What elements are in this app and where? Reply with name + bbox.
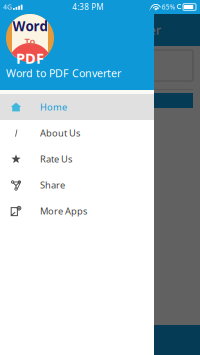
- staticText: Word: [12, 17, 47, 35]
- staticText: CONVERT: [75, 93, 125, 108]
- staticText: 4G: [3, 3, 12, 11]
- staticText: Word to PDF Converter: [30, 22, 161, 38]
- button[interactable]: Share: [0, 172, 154, 198]
- button[interactable]: Rate Us: [0, 146, 154, 172]
- staticText: 4:38 PM: [72, 2, 103, 12]
- staticText: Word to PDF Converter: [6, 66, 121, 80]
- staticText: Home: [40, 101, 67, 113]
- button[interactable]: About Us: [0, 120, 154, 146]
- staticText: Rate Us: [40, 153, 72, 165]
- staticText: Share: [40, 179, 65, 191]
- button[interactable]: More Apps: [0, 198, 154, 224]
- staticText: More Apps: [40, 205, 87, 217]
- staticText: 65%: [161, 3, 175, 11]
- staticText: PDF: [16, 48, 44, 68]
- staticText: About Us: [40, 127, 80, 139]
- staticText: To: [24, 35, 35, 47]
- button[interactable]: Home: [0, 94, 154, 120]
